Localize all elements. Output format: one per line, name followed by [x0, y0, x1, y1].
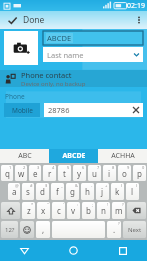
- button[interactable]: 1: [1, 165, 13, 181]
- staticText: q: [5, 168, 10, 179]
- staticText: s: [26, 186, 30, 197]
- button[interactable]: Expand name fields: [129, 47, 143, 62]
- staticText: 7: [97, 165, 100, 170]
- button[interactable]: Space: [52, 221, 105, 238]
- button[interactable]: #: [22, 183, 34, 200]
- button[interactable]: $: [36, 183, 49, 200]
- staticText: #: [30, 183, 33, 188]
- staticText: Last name: [47, 50, 129, 60]
- button[interactable]: 6: [73, 165, 86, 181]
- button[interactable]: ABC: [0, 149, 49, 163]
- button[interactable]: 0: [133, 165, 146, 181]
- staticText: 28786: [48, 105, 129, 115]
- button[interactable]: Home: [49, 240, 98, 261]
- staticText: ": [47, 202, 49, 207]
- staticText: Phone contact: [21, 70, 72, 80]
- staticText: ': [63, 202, 64, 207]
- staticText: 6: [82, 165, 85, 170]
- button[interactable]: Done: [5, 12, 47, 28]
- staticText: j: [101, 186, 104, 197]
- button[interactable]: ': [52, 202, 65, 219]
- button[interactable]: 4: [43, 165, 56, 181]
- button[interactable]: :: [67, 202, 80, 219]
- button[interactable]: 28786: [44, 103, 143, 117]
- staticText: c: [57, 205, 61, 216]
- button[interactable]: Last name: [43, 47, 143, 62]
- button[interactable]: 3: [29, 165, 41, 181]
- staticText: 12?: [5, 226, 15, 234]
- button[interactable]: 2: [15, 165, 27, 181]
- staticText: t: [63, 168, 66, 179]
- staticText: Done: [23, 14, 45, 26]
- staticText: o: [122, 168, 127, 179]
- staticText: :: [77, 202, 79, 207]
- button[interactable]: Recent apps: [98, 240, 147, 261]
- button[interactable]: ?: [107, 221, 121, 238]
- button[interactable]: +: [96, 183, 109, 200]
- button[interactable]: Backspace: [127, 202, 146, 219]
- staticText: z: [27, 205, 31, 216]
- button[interactable]: &: [66, 183, 79, 200]
- button[interactable]: ACHHA: [98, 149, 147, 163]
- staticText: n: [101, 205, 106, 216]
- staticText: $: [45, 183, 48, 188]
- staticText: 3: [37, 165, 40, 170]
- staticText: a: [12, 186, 17, 197]
- staticText: !: [107, 202, 109, 207]
- button[interactable]: 8: [103, 165, 116, 181]
- button[interactable]: ,: [36, 221, 50, 238]
- button[interactable]: Next: [123, 221, 146, 238]
- button[interactable]: @: [8, 183, 20, 200]
- button[interactable]: !: [97, 202, 110, 219]
- button[interactable]: 5: [58, 165, 71, 181]
- staticText: b: [86, 205, 91, 216]
- staticText: _: [61, 183, 63, 188]
- staticText: 02:19: [127, 1, 145, 11]
- button[interactable]: _: [51, 183, 64, 200]
- staticText: 5: [67, 165, 70, 170]
- button[interactable]: (: [111, 183, 124, 200]
- staticText: y: [77, 168, 82, 179]
- button[interactable]: ;: [82, 202, 95, 219]
- staticText: ABCDE: [62, 151, 86, 161]
- button[interactable]: Emoji: [20, 221, 34, 238]
- button[interactable]: 7: [88, 165, 101, 181]
- button[interactable]: More options: [131, 11, 147, 29]
- staticText: 9: [127, 165, 130, 170]
- button[interactable]: Add photo: [4, 31, 38, 65]
- button[interactable]: Clear phone number: [129, 103, 143, 117]
- staticText: i: [108, 168, 111, 179]
- staticText: d: [40, 186, 45, 197]
- button[interactable]: ABCDE: [49, 149, 98, 163]
- button[interactable]: *: [22, 202, 35, 219]
- staticText: +: [105, 183, 108, 188]
- button[interactable]: Symbols: [1, 221, 18, 238]
- button[interactable]: Phone contact: [0, 70, 147, 87]
- staticText: 8: [112, 165, 115, 170]
- button[interactable]: -: [81, 183, 94, 200]
- button[interactable]: Mobile: [4, 103, 40, 117]
- staticText: ;: [92, 202, 94, 207]
- staticText: m: [115, 205, 123, 216]
- button[interactable]: Back: [0, 240, 49, 261]
- staticText: .: [113, 224, 116, 235]
- button[interactable]: ": [37, 202, 50, 219]
- staticText: ACHHA: [111, 151, 135, 161]
- button[interactable]: 9: [118, 165, 131, 181]
- staticText: ): [136, 183, 138, 188]
- staticText: w: [18, 168, 25, 179]
- button[interactable]: ): [126, 183, 139, 200]
- staticText: Next: [128, 226, 142, 234]
- staticText: -: [91, 183, 93, 188]
- staticText: x: [41, 205, 46, 216]
- staticText: ?: [122, 202, 124, 207]
- button[interactable]: ?: [112, 202, 125, 219]
- button[interactable]: Shift: [1, 202, 20, 219]
- staticText: *: [31, 202, 34, 207]
- staticText: k: [115, 186, 120, 197]
- staticText: g: [70, 186, 75, 197]
- staticText: p: [137, 168, 142, 179]
- staticText: Device only, no backup: [21, 80, 86, 87]
- staticText: h: [85, 186, 90, 197]
- button[interactable]: ABCDE: [43, 31, 143, 45]
